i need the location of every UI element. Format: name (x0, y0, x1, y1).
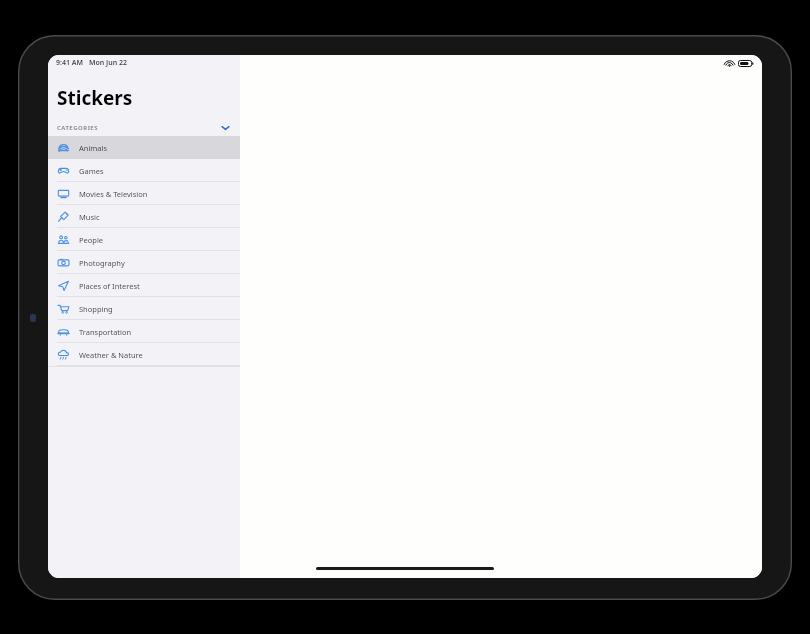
button[interactable]: Movies & Television (48, 182, 240, 205)
staticText: Shopping (79, 304, 113, 314)
button[interactable]: Music (48, 205, 240, 228)
button[interactable]: Places of Interest (48, 274, 240, 297)
staticText: 9:41 AM (56, 58, 83, 68)
staticText: Mon Jun 22 (89, 58, 128, 68)
button[interactable]: Shopping (48, 297, 240, 320)
staticText: Stickers (57, 85, 133, 111)
staticText: Movies & Television (79, 189, 148, 199)
staticText: Weather & Nature (79, 350, 143, 360)
button[interactable]: Games (48, 159, 240, 182)
staticText: Music (79, 212, 100, 222)
staticText: Games (79, 166, 104, 176)
button[interactable]: People (48, 228, 240, 251)
staticText: Places of Interest (79, 281, 140, 291)
button[interactable]: Animals (48, 136, 240, 159)
staticText: People (79, 235, 104, 245)
staticText: CATEGORIES (57, 124, 99, 132)
button[interactable]: CATEGORIES (48, 120, 240, 136)
staticText: Transportation (79, 327, 132, 337)
staticText: Photography (79, 258, 125, 268)
button[interactable]: Weather & Nature (48, 343, 240, 366)
staticText: Animals (79, 143, 108, 153)
button[interactable]: Transportation (48, 320, 240, 343)
button[interactable]: Photography (48, 251, 240, 274)
